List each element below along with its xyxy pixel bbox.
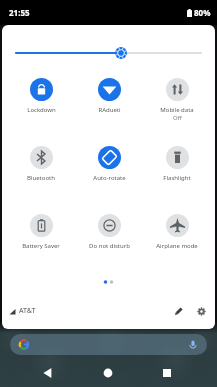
staticText: AT&T [19,306,36,316]
button[interactable]: Airplane mode [144,214,210,264]
button[interactable]: Settings [192,302,210,320]
button[interactable]: RAdueti [76,78,142,128]
button[interactable]: Do not disturb [76,214,142,264]
button[interactable]: Search [10,334,207,355]
button[interactable]: Home [94,359,122,387]
staticText: Auto-rotate [93,174,126,182]
button[interactable]: Flashlight [144,146,210,196]
staticText: Mobile data [160,106,194,114]
staticText: Off [173,114,182,122]
staticText: 21:55 [9,7,30,18]
button[interactable]: Battery Saver [8,214,74,264]
staticText: Flashlight [163,174,191,182]
staticText: Bluetooth [27,174,55,182]
button[interactable]: Lockdown [8,78,74,128]
button[interactable]: Bluetooth [8,146,74,196]
button[interactable]: Auto-rotate [76,146,142,196]
button[interactable]: Mobile data [144,78,210,128]
staticText: Lockdown [27,106,56,114]
staticText: 80% [194,7,211,18]
button[interactable]: Edit [169,302,187,320]
staticText: Battery Saver [22,242,60,250]
staticText: RAdueti [98,106,121,114]
staticText: Do not disturb [89,242,130,250]
button[interactable]: Recents [153,359,181,387]
button[interactable]: Back [34,359,62,387]
staticText: Airplane mode [156,242,198,250]
